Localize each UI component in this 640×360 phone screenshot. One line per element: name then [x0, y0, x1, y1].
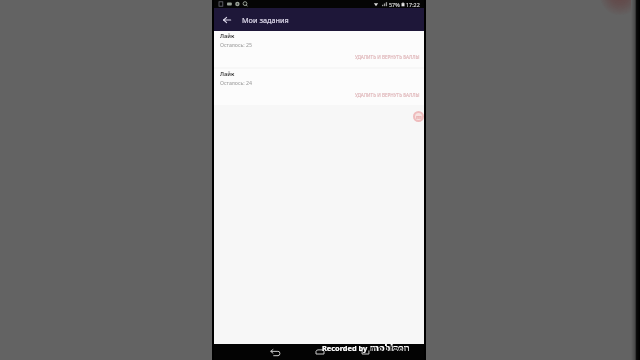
button[interactable]: Recent apps	[359, 345, 371, 357]
staticText: Лайк	[220, 70, 235, 77]
staticText: m	[416, 113, 422, 120]
button[interactable]: Back	[220, 13, 234, 27]
staticText: УДАЛИТЬ И ВЕРНУТЬ БАЛЛЫ	[355, 54, 420, 60]
staticText: Осталось: 24	[220, 79, 252, 86]
button[interactable]: Mobizen record	[413, 111, 424, 122]
button[interactable]: УДАЛИТЬ И ВЕРНУТЬ БАЛЛЫ	[355, 54, 420, 60]
staticText: mobizen	[370, 342, 410, 354]
staticText: Лайк	[220, 32, 235, 39]
button[interactable]: УДАЛИТЬ И ВЕРНУТЬ БАЛЛЫ	[355, 92, 420, 98]
button[interactable]: Лайк	[214, 31, 424, 67]
staticText: Осталось: 25	[220, 41, 252, 48]
button[interactable]: Back	[269, 345, 281, 357]
button[interactable]: Home	[314, 345, 326, 357]
staticText: Мои задания	[242, 15, 289, 25]
staticText: Recorded by	[322, 343, 368, 353]
staticText: 17:22	[406, 1, 420, 8]
staticText: 57%	[389, 1, 400, 8]
staticText: УДАЛИТЬ И ВЕРНУТЬ БАЛЛЫ	[355, 92, 420, 98]
button[interactable]: Лайк	[214, 69, 424, 105]
staticText: mobizen	[370, 343, 410, 353]
